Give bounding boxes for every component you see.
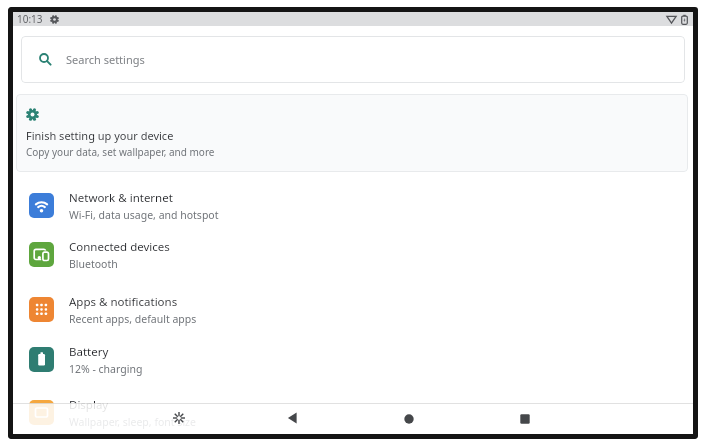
staticText: Battery <box>69 344 109 360</box>
staticText: Recent apps, default apps <box>69 312 197 326</box>
staticText: Search settings <box>66 52 145 67</box>
button[interactable]: Apps & notifications <box>13 284 693 335</box>
staticText: Finish setting up your device <box>26 128 174 143</box>
button[interactable] <box>172 411 186 425</box>
staticText: Network & internet <box>69 190 173 206</box>
staticText: Connected devices <box>69 239 170 255</box>
button[interactable] <box>404 414 414 424</box>
button[interactable] <box>287 412 298 424</box>
staticText: Display <box>69 397 109 413</box>
staticText: Apps & notifications <box>69 294 178 310</box>
button[interactable]: Battery <box>13 334 693 385</box>
staticText: Copy your data, set wallpaper, and more <box>26 145 215 159</box>
button[interactable]: Finish setting up your device <box>16 94 688 172</box>
button[interactable] <box>520 414 530 424</box>
staticText: 10:13 <box>17 12 43 26</box>
button[interactable]: Search settings <box>21 36 685 83</box>
staticText: Wi-Fi, data usage, and hotspot <box>69 208 219 222</box>
button[interactable]: Connected devices <box>13 229 693 280</box>
button[interactable]: Display <box>13 387 693 438</box>
staticText: 12% - charging <box>69 362 143 376</box>
button[interactable]: Network & internet <box>13 180 693 231</box>
staticText: Bluetooth <box>69 257 118 271</box>
staticText: Wallpaper, sleep, font size <box>69 415 196 429</box>
